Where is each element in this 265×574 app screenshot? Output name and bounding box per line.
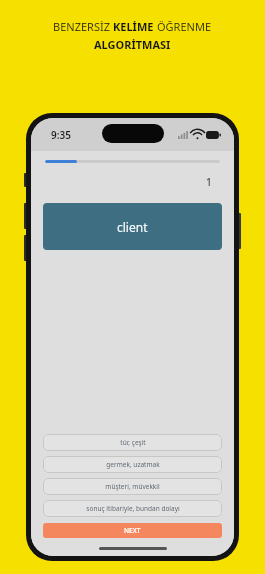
staticText: KELİME	[113, 19, 157, 34]
button[interactable]: tür, çeşit	[43, 434, 222, 451]
staticText: germek, uzatmak	[106, 460, 160, 469]
other: Home indicator	[99, 547, 167, 550]
button[interactable]: müşteri, müvekkil	[43, 478, 222, 495]
staticText: BENZERSİZ	[53, 19, 113, 34]
staticText: ÖĞRENME	[157, 19, 212, 34]
staticText: ALGORİTMASI	[94, 37, 171, 52]
staticText: 9:35	[51, 128, 71, 142]
staticText: tür, çeşit	[120, 438, 146, 447]
staticText: sonuç itibariyle, bundan dolayı	[86, 504, 180, 513]
button[interactable]: NEXT	[43, 523, 222, 538]
button[interactable]: sonuç itibariyle, bundan dolayı	[43, 500, 222, 517]
staticText: müşteri, müvekkil	[105, 482, 160, 491]
staticText: 1	[206, 175, 212, 189]
button[interactable]: client	[43, 203, 222, 250]
button[interactable]: germek, uzatmak	[43, 456, 222, 473]
staticText: NEXT	[124, 526, 141, 535]
staticText: client	[117, 219, 148, 235]
